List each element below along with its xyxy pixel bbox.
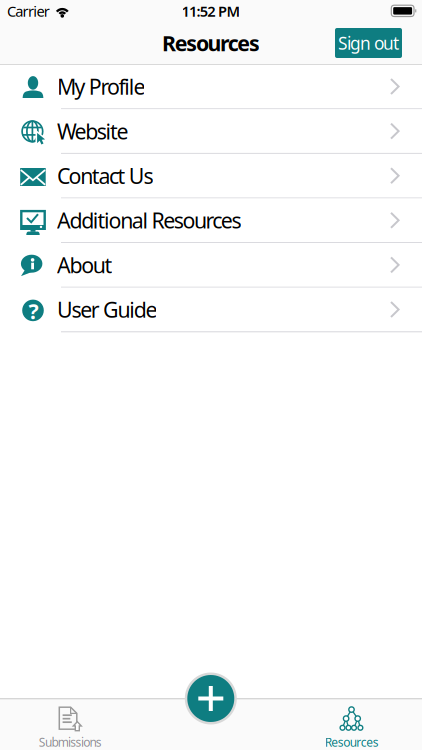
- staticText: Contact Us: [57, 161, 153, 190]
- button[interactable]: Submissions: [0, 706, 141, 750]
- staticText: Sign out: [338, 31, 399, 54]
- staticText: User Guide: [57, 295, 157, 324]
- button[interactable]: My Profile: [0, 65, 422, 109]
- staticText: Additional Resources: [57, 206, 241, 234]
- staticText: My Profile: [57, 72, 145, 101]
- staticText: Website: [57, 117, 129, 145]
- button[interactable]: Additional Resources: [0, 198, 422, 243]
- button[interactable]: Add submission: [185, 672, 237, 724]
- button[interactable]: ?: [0, 288, 422, 332]
- button[interactable]: Website: [0, 109, 422, 154]
- staticText: About: [57, 251, 112, 279]
- staticText: Carrier: [7, 1, 50, 21]
- staticText: Resources: [162, 29, 260, 57]
- staticText: ?: [28, 297, 38, 325]
- button[interactable]: About: [0, 243, 422, 288]
- staticText: Submissions: [39, 734, 102, 750]
- staticText: Resources: [325, 734, 379, 750]
- button[interactable]: Sign out: [335, 28, 402, 58]
- button[interactable]: Resources: [281, 706, 422, 750]
- staticText: 11:52 PM: [182, 1, 240, 21]
- button[interactable]: Contact Us: [0, 154, 422, 198]
